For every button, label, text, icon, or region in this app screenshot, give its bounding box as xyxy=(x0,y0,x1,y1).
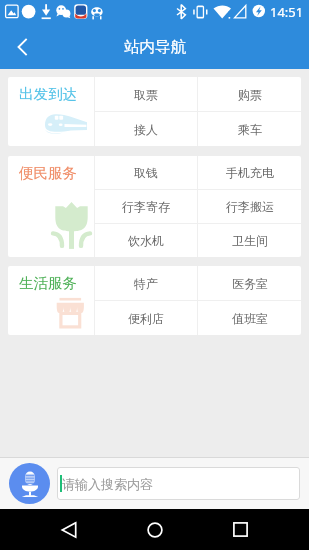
staticText: 取钱 xyxy=(134,165,158,180)
staticText: 便利店 xyxy=(128,311,164,326)
button[interactable]: Back xyxy=(0,24,42,69)
staticText: 14:51 xyxy=(270,3,304,21)
staticText: 乘车 xyxy=(238,122,262,137)
button[interactable]: 取钱 xyxy=(95,156,197,189)
button[interactable]: 特产 xyxy=(95,266,197,300)
staticText: 出发到达 xyxy=(19,85,77,103)
button[interactable]: 卫生间 xyxy=(198,224,301,257)
button[interactable]: 乘车 xyxy=(198,112,301,146)
button[interactable]: 医务室 xyxy=(198,266,301,300)
button[interactable]: 值班室 xyxy=(198,301,301,335)
button[interactable]: 接人 xyxy=(95,112,197,146)
staticText: 卫生间 xyxy=(232,233,268,248)
staticText: 接人 xyxy=(134,122,158,137)
staticText: 行李寄存 xyxy=(122,199,170,214)
staticText: 取票 xyxy=(134,87,158,102)
staticText: 手机充电 xyxy=(226,165,274,180)
button[interactable]: 便利店 xyxy=(95,301,197,335)
button[interactable]: 手机充电 xyxy=(198,156,301,189)
staticText: 请输入搜索内容 xyxy=(62,476,153,492)
staticText: 饮水机 xyxy=(128,233,164,248)
button[interactable]: 行李寄存 xyxy=(95,190,197,223)
button[interactable]: 行李搬运 xyxy=(198,190,301,223)
staticText: 值班室 xyxy=(232,311,268,326)
staticText: 行李搬运 xyxy=(226,199,274,214)
button[interactable]: 取票 xyxy=(95,77,197,111)
staticText: 站内导航 xyxy=(124,37,186,57)
button[interactable]: Recent apps xyxy=(218,509,262,550)
staticText: 特产 xyxy=(134,276,158,291)
staticText: 生活服务 xyxy=(19,274,77,292)
button[interactable]: 饮水机 xyxy=(95,224,197,257)
button[interactable]: Back xyxy=(47,509,91,550)
button[interactable]: Voice search xyxy=(9,463,50,504)
button[interactable]: 购票 xyxy=(198,77,301,111)
button[interactable]: Home xyxy=(133,509,177,550)
staticText: 购票 xyxy=(238,87,262,102)
staticText: 便民服务 xyxy=(19,164,77,182)
staticText: 医务室 xyxy=(232,276,268,291)
button[interactable]: 请输入搜索内容 xyxy=(57,467,300,500)
